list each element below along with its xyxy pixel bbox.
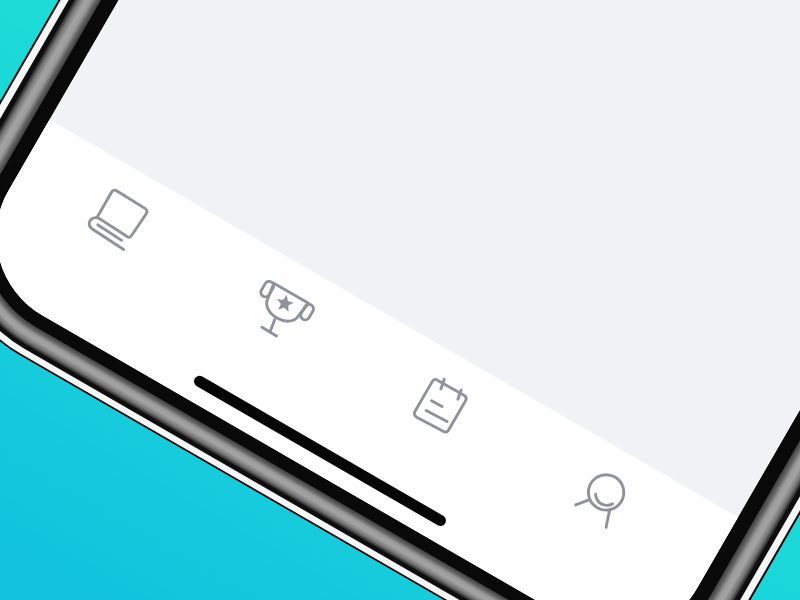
button[interactable]: Notes [307,318,566,568]
button[interactable]: Find people [479,418,738,600]
button[interactable]: Library [0,120,222,369]
button[interactable]: Achievements [135,219,393,468]
